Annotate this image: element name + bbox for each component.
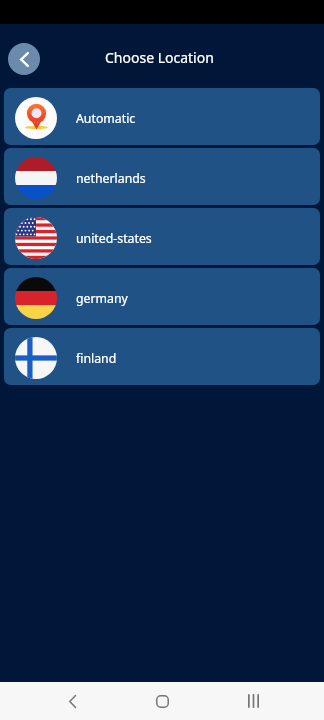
staticText: united-states [76,230,152,247]
button[interactable]: united-states [4,208,320,265]
button[interactable]: germany [4,268,320,325]
button[interactable]: Back [50,682,94,720]
staticText: netherlands [76,170,146,187]
staticText: Automatic [76,110,136,127]
staticText: Choose Location [105,48,214,67]
button[interactable]: Automatic [4,88,320,145]
button[interactable]: Back [8,43,40,75]
button[interactable]: finland [4,328,320,385]
button[interactable]: Recent apps [231,682,275,720]
staticText: germany [76,290,128,307]
button[interactable]: netherlands [4,148,320,205]
button[interactable]: Home [140,682,185,720]
staticText: finland [76,350,117,367]
